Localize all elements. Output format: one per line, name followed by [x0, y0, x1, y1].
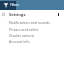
button[interactable]: Display options — [0, 33, 64, 37]
staticText: Account info — [9, 39, 30, 43]
staticText: Privacy and safety — [9, 27, 39, 31]
staticText: Notifications and sounds — [9, 20, 50, 24]
button[interactable]: Settings — [0, 11, 64, 17]
button[interactable]: Account info — [0, 39, 64, 43]
staticText: Filters — [10, 3, 20, 7]
button[interactable]: Privacy and safety — [0, 27, 64, 31]
staticText: Display options — [9, 33, 35, 37]
button[interactable]: Filter — [3, 2, 9, 8]
staticText: Settings — [9, 12, 26, 17]
button[interactable]: Notifications and sounds — [0, 20, 64, 24]
